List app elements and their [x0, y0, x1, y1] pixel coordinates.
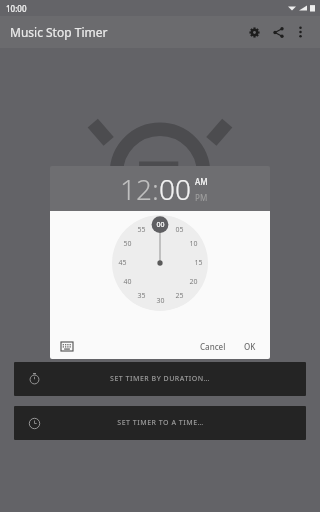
staticText: 40 — [123, 277, 132, 287]
staticText: OK — [244, 341, 256, 352]
staticText: 35 — [137, 291, 146, 301]
staticText: Cancel — [200, 341, 226, 352]
button[interactable]: SET TIMER TO A TIME… — [14, 406, 306, 440]
button[interactable]: SET TIMER BY DURATION… — [14, 362, 306, 396]
button[interactable]: Share — [266, 20, 290, 44]
staticText: 25 — [175, 291, 184, 301]
staticText: : — [152, 170, 159, 208]
button[interactable]: Switch to keyboard input — [58, 337, 76, 355]
staticText: 10 — [189, 239, 198, 249]
staticText: 50 — [123, 239, 132, 249]
staticText: SET TIMER BY DURATION… — [110, 374, 210, 384]
staticText: 05 — [175, 225, 184, 235]
button[interactable]: Settings — [242, 20, 266, 44]
button[interactable]: 12 — [120, 170, 152, 208]
staticText: 55 — [137, 225, 146, 235]
staticText: 20 — [189, 277, 198, 287]
staticText: 45 — [118, 258, 127, 268]
staticText: 30 — [156, 296, 165, 306]
staticText: 15 — [194, 258, 203, 268]
button[interactable]: OK — [238, 338, 262, 355]
staticText: SET TIMER TO A TIME… — [117, 418, 204, 428]
button[interactable]: More options — [290, 22, 310, 42]
button[interactable]: PM — [195, 192, 208, 203]
button[interactable]: AM — [195, 176, 208, 187]
staticText: 00 — [156, 220, 165, 230]
button[interactable]: 00 — [159, 170, 191, 208]
staticText: 10:00 — [6, 3, 27, 14]
staticText: Music Stop Timer — [10, 24, 108, 40]
button[interactable]: Cancel — [194, 338, 232, 355]
